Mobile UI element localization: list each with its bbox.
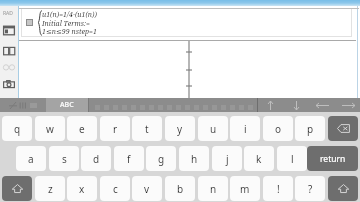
button[interactable]: v [132,176,162,201]
staticText: p [307,122,314,136]
button[interactable]: ? [295,176,325,201]
staticText: v [144,182,150,196]
button[interactable]: Math templates [0,98,46,112]
button[interactable]: p [295,116,325,141]
staticText: o [275,122,282,136]
button[interactable]: m [230,176,260,201]
staticText: x [79,182,85,196]
button[interactable]: Left [310,98,335,112]
staticText: i [244,122,247,136]
button[interactable]: s [49,146,79,171]
button[interactable]: c [100,176,130,201]
button[interactable]: Down [284,98,309,112]
staticText: 1≤n≤99 nstep=1 [42,27,97,37]
button[interactable]: o [263,116,293,141]
button[interactable]: h [179,146,209,171]
staticText: a [28,152,34,166]
button[interactable]: Backspace [328,116,358,141]
staticText: h [191,152,198,166]
button[interactable]: i [230,116,260,141]
button[interactable]: Documents [3,46,15,56]
staticText: m [240,182,250,196]
staticText: RAD [3,10,13,17]
button[interactable]: Screen capture [3,79,15,90]
other: Shift [12,184,23,193]
button[interactable]: Shift [328,176,358,201]
button[interactable]: j [212,146,242,171]
button[interactable]: return [307,146,358,171]
button[interactable]: k [244,146,274,171]
staticText: c [113,182,118,196]
button[interactable]: q [2,116,32,141]
button[interactable]: g [146,146,176,171]
button[interactable]: y [165,116,195,141]
button[interactable]: n [198,176,228,201]
button[interactable]: Shift [2,176,32,201]
staticText: e [79,122,85,136]
button[interactable]: Page layout [3,25,15,36]
staticText: n [210,182,217,196]
button[interactable]: w [35,116,65,141]
staticText: return [320,153,346,165]
staticText: t [145,122,149,136]
staticText: z [48,182,53,196]
button[interactable]: ! [263,176,293,201]
button[interactable]: u [198,116,228,141]
button[interactable]: t [132,116,162,141]
staticText: ABC [60,100,74,110]
button[interactable]: ABC [46,98,88,112]
staticText: Initial Terms:= [42,19,90,29]
staticText: r [113,122,118,136]
staticText: y [177,122,183,136]
staticText: u [210,122,217,136]
staticText: w [46,122,54,136]
staticText: l [291,152,294,166]
button[interactable]: b [165,176,195,201]
staticText: s [62,152,67,166]
staticText: ! [277,182,280,196]
other: Backspace [337,124,350,133]
staticText: d [93,152,100,166]
button[interactable]: a [16,146,46,171]
button[interactable]: r [100,116,130,141]
button[interactable]: View settings [3,63,15,71]
button[interactable]: Right [336,98,360,112]
staticText: q [14,122,21,136]
staticText: ? [308,182,313,196]
button[interactable]: e [67,116,97,141]
button[interactable]: d [81,146,111,171]
staticText: u1(n)=1/4·(u1(n)) [42,10,97,20]
staticText: k [256,152,262,166]
other: Shift [338,184,349,193]
button[interactable]: x [67,176,97,201]
button[interactable]: Up [258,98,283,112]
button[interactable]: l [277,146,307,171]
button[interactable]: f [114,146,144,171]
button[interactable]: z [35,176,65,201]
staticText: g [158,152,165,166]
staticText: j [226,152,229,166]
staticText: f [127,152,131,166]
staticText: b [177,182,184,196]
